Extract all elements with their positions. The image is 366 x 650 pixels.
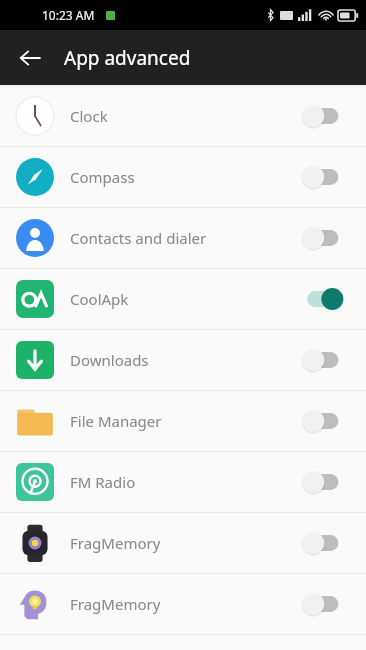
staticText: FragMemory: [70, 594, 298, 614]
button[interactable]: [298, 587, 350, 621]
staticText: Downloads: [70, 350, 298, 370]
button[interactable]: File Manager: [0, 391, 366, 451]
button[interactable]: Clock: [0, 86, 366, 146]
button[interactable]: [298, 282, 350, 316]
staticText: FragMemory: [70, 533, 298, 553]
button[interactable]: FM Radio: [0, 452, 366, 512]
staticText: CoolApk: [70, 289, 298, 309]
button[interactable]: CoolApk: [0, 269, 366, 329]
button[interactable]: [298, 404, 350, 438]
button[interactable]: FragMemory: [0, 513, 366, 573]
staticText: App advanced: [64, 45, 191, 71]
button[interactable]: Contacts and dialer: [0, 208, 366, 268]
button[interactable]: [298, 99, 350, 133]
button[interactable]: Downloads: [0, 330, 366, 390]
button[interactable]: [298, 526, 350, 560]
staticText: FM Radio: [70, 472, 298, 492]
button[interactable]: [298, 465, 350, 499]
button[interactable]: Compass: [0, 147, 366, 207]
button[interactable]: [298, 160, 350, 194]
staticText: 10:23 AM: [42, 7, 95, 23]
button[interactable]: FragMemory: [0, 574, 366, 634]
button[interactable]: Back: [8, 36, 52, 80]
button[interactable]: [298, 343, 350, 377]
staticText: Contacts and dialer: [70, 228, 298, 248]
button[interactable]: [298, 221, 350, 255]
staticText: File Manager: [70, 411, 298, 431]
staticText: Compass: [70, 167, 298, 187]
staticText: Clock: [70, 106, 298, 126]
